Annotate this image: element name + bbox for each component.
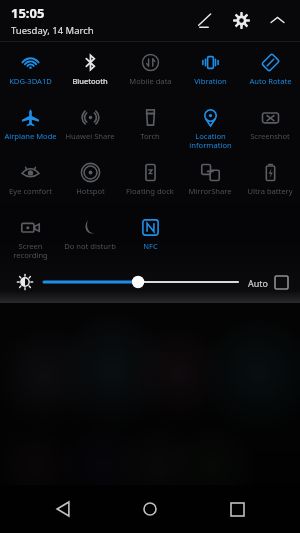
button[interactable]: KDG-3DA1D <box>0 47 60 102</box>
button[interactable]: MirrorShare <box>180 157 240 212</box>
staticText: Tuesday, 14 March <box>11 24 94 37</box>
staticText: Auto <box>248 277 269 289</box>
button[interactable]: Do not disturb <box>60 212 120 267</box>
staticText: Floating dock <box>126 186 174 196</box>
staticText: Airplane Mode <box>4 131 57 141</box>
button[interactable]: Collapse <box>264 7 290 33</box>
button[interactable]: Screen recording <box>0 212 60 267</box>
button[interactable]: Mobile data <box>120 47 180 102</box>
button[interactable]: Home <box>126 485 174 533</box>
staticText: NFC <box>143 241 158 251</box>
staticText: Huawei Share <box>65 131 115 141</box>
button[interactable] <box>44 270 238 294</box>
button[interactable]: Settings <box>228 7 254 33</box>
staticText: Ultra battery <box>247 186 293 196</box>
button[interactable]: Recents <box>213 485 261 533</box>
button[interactable]: Vibration <box>180 47 240 102</box>
button[interactable]: Torch <box>120 102 180 157</box>
staticText: Auto Rotate <box>249 76 292 86</box>
button[interactable]: Back <box>39 485 87 533</box>
staticText: KDG-3DA1D <box>9 76 52 86</box>
staticText: Hotspot <box>76 186 105 196</box>
staticText: Eye comfort <box>9 186 52 196</box>
button[interactable]: Ultra battery <box>240 157 300 212</box>
staticText: Location information <box>189 131 232 151</box>
button[interactable]: Huawei Share <box>60 102 120 157</box>
staticText: Do not disturb <box>64 241 116 251</box>
button[interactable]: Brightness <box>12 269 38 295</box>
staticText: Screenshot <box>250 131 290 141</box>
button[interactable]: Location information <box>180 102 240 157</box>
staticText: Vibration <box>194 76 227 86</box>
staticText: 15:05 <box>11 4 45 22</box>
button[interactable]: Airplane Mode <box>0 102 60 157</box>
button[interactable]: Screenshot <box>240 102 300 157</box>
staticText: Mobile data <box>129 76 172 86</box>
button[interactable]: Eye comfort <box>0 157 60 212</box>
staticText: Torch <box>140 131 160 141</box>
button[interactable]: Auto Rotate <box>240 47 300 102</box>
button[interactable]: Edit <box>192 7 218 33</box>
button[interactable]: Floating dock <box>120 157 180 212</box>
button[interactable]: Bluetooth <box>60 47 120 102</box>
staticText: Screen recording <box>13 241 48 261</box>
staticText: Bluetooth <box>72 76 108 86</box>
button[interactable]: Hotspot <box>60 157 120 212</box>
button[interactable]: Auto <box>248 276 288 289</box>
staticText: MirrorShare <box>188 186 232 196</box>
button[interactable]: NFC <box>120 212 180 267</box>
